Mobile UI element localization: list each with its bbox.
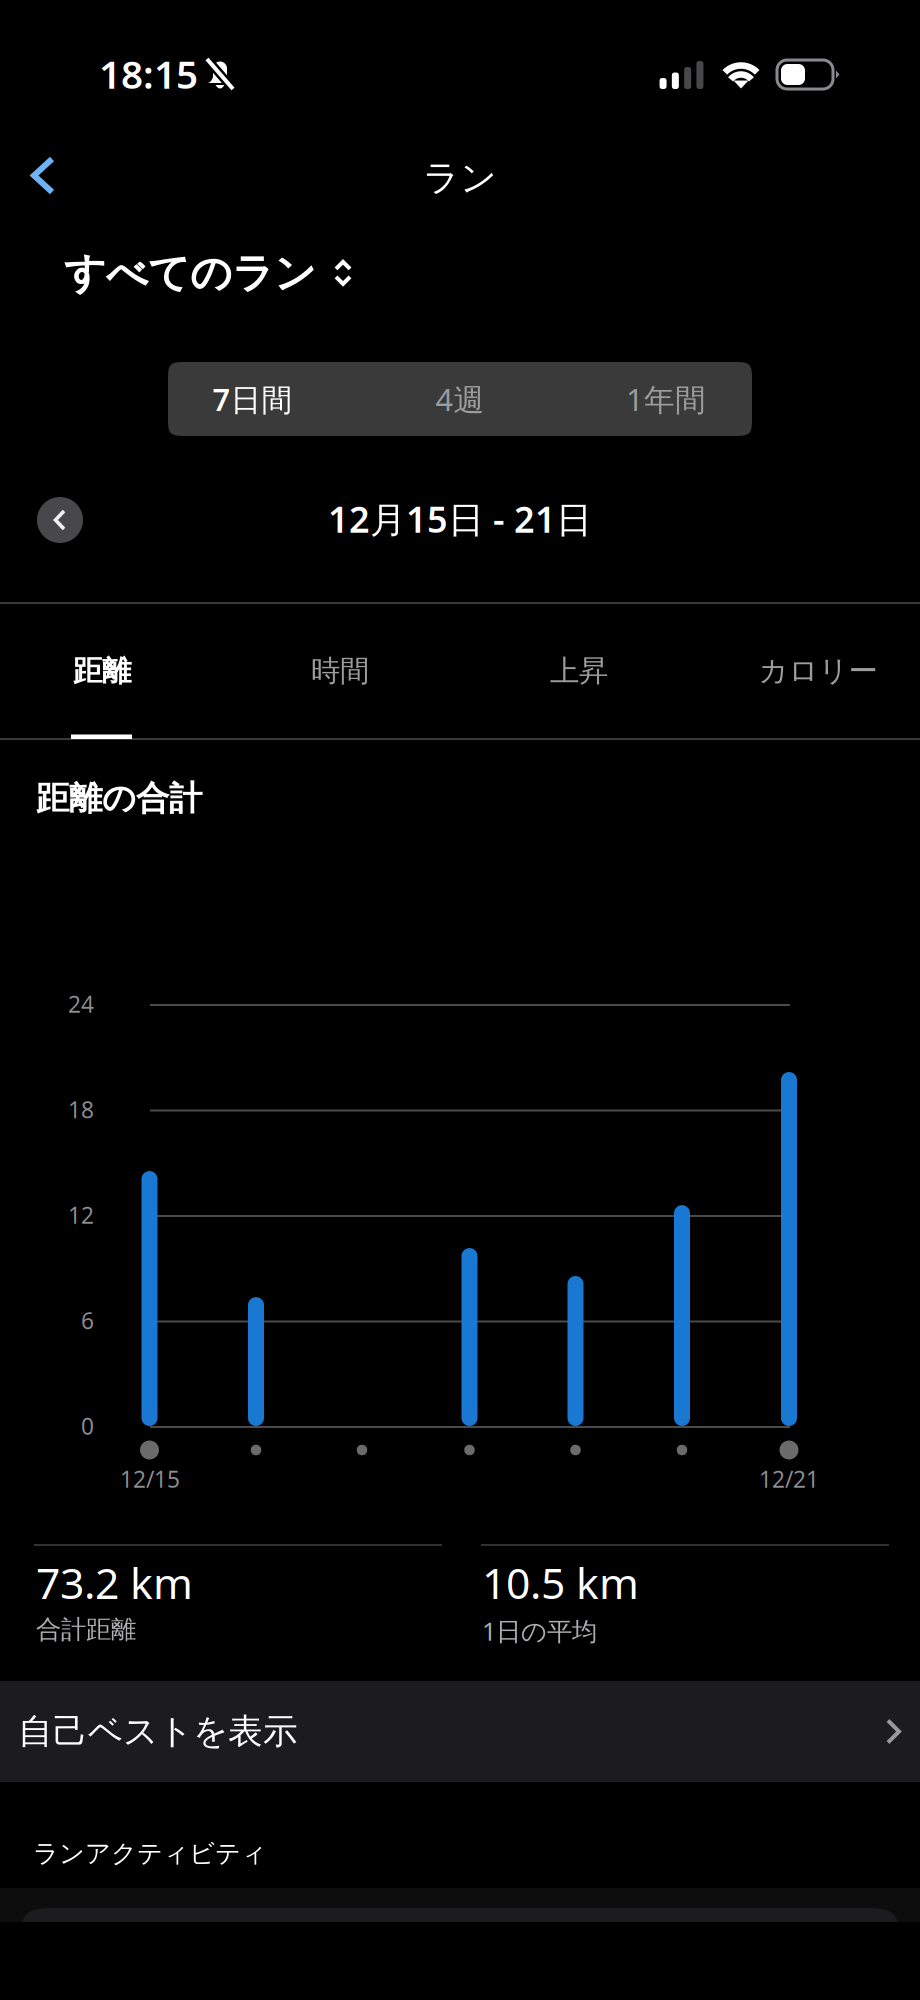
staticText: 18:15: [99, 48, 198, 99]
staticText: 12: [68, 1200, 94, 1230]
staticText: 73.2 km: [36, 1554, 193, 1611]
button[interactable]: Back: [15, 140, 71, 211]
staticText: 自己ベストを表示: [18, 1710, 298, 1753]
staticText: 1日の平均: [482, 1614, 597, 1648]
button[interactable]: 自己ベストを表示: [0, 1681, 920, 1782]
button[interactable]: 時間: [225, 604, 455, 738]
staticText: 10.5 km: [482, 1554, 639, 1611]
button[interactable]: 上昇: [464, 604, 694, 738]
staticText: 6: [81, 1305, 94, 1336]
staticText: 18: [68, 1094, 94, 1125]
button[interactable]: Previous week: [37, 497, 83, 543]
staticText: 12月15日 - 21日: [328, 495, 592, 543]
staticText: 7日間: [212, 379, 292, 419]
button[interactable]: 1年間: [571, 362, 761, 436]
staticText: 上昇: [550, 653, 608, 689]
staticText: 12/15: [120, 1464, 180, 1494]
staticText: ランアクティビティ: [33, 1838, 267, 1869]
staticText: 時間: [311, 653, 369, 689]
staticText: 12/21: [759, 1464, 819, 1494]
button[interactable]: カロリー: [703, 604, 920, 738]
staticText: 0: [81, 1411, 94, 1441]
button[interactable]: すべてのラン: [64, 248, 353, 299]
button[interactable]: 距離: [0, 604, 217, 738]
staticText: すべてのラン: [64, 248, 316, 299]
button[interactable]: 7日間: [157, 362, 347, 436]
staticText: 合計距離: [36, 1614, 136, 1645]
staticText: 距離: [73, 653, 131, 689]
staticText: カロリー: [758, 653, 877, 689]
staticText: 1年間: [626, 379, 706, 419]
staticText: 距離の合計: [36, 778, 202, 819]
button[interactable]: 4週: [365, 362, 555, 436]
staticText: 24: [68, 989, 94, 1019]
staticText: 4週: [435, 379, 484, 419]
staticText: ラン: [423, 156, 497, 200]
